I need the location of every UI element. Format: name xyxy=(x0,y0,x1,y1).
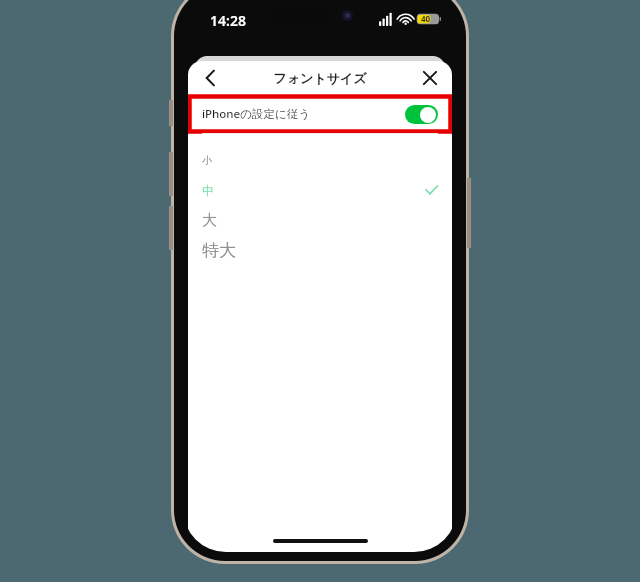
staticText: iPhoneの設定に従う xyxy=(202,106,310,122)
staticText: 40 xyxy=(421,13,431,24)
button[interactable]: Back xyxy=(194,62,226,94)
other: Follow iPhone setting toggle xyxy=(405,105,438,124)
button[interactable]: 特大 xyxy=(188,235,452,265)
staticText: 14:28 xyxy=(210,11,246,30)
button[interactable]: Close xyxy=(414,62,446,94)
staticText: 大 xyxy=(202,211,217,230)
staticText: 小 xyxy=(202,154,212,167)
button[interactable]: iPhoneの設定に従う xyxy=(188,95,452,133)
staticText: 中 xyxy=(202,183,214,198)
button[interactable]: 大 xyxy=(188,205,452,235)
button[interactable]: 中 xyxy=(188,175,452,205)
staticText: 特大 xyxy=(202,240,236,261)
staticText: フォントサイズ xyxy=(273,70,367,86)
button[interactable]: 小 xyxy=(188,145,452,175)
